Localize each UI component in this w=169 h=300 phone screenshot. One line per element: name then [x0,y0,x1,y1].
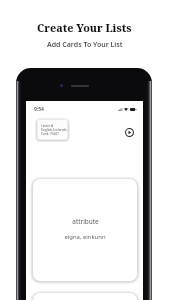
button[interactable] [33,293,137,300]
staticText: attribute [72,217,99,226]
staticText: Card: 7/447 [41,131,59,135]
staticText: eigna, einkunn [64,233,106,241]
button[interactable]: Play audio [122,125,136,139]
staticText: 9:54 [34,106,44,113]
staticText: Letter A [41,123,54,127]
staticText: Create Your Lists [37,21,132,35]
staticText: English-Icelandic [41,127,68,131]
staticText: Add Cards To Your List [47,40,123,50]
button[interactable]: Letter A [37,119,68,140]
button[interactable]: attribute [33,179,137,281]
